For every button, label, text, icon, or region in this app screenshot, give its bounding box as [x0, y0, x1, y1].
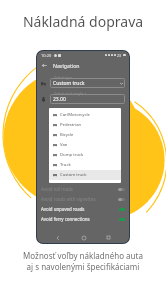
button[interactable]: Truck	[53, 160, 121, 170]
staticText: 23	[117, 53, 122, 58]
button[interactable]: Back	[53, 233, 62, 242]
staticText: Avoid roads with vignettes	[41, 196, 96, 202]
button[interactable]: Recents	[104, 233, 113, 242]
staticText: Pedestrian	[60, 122, 82, 128]
staticText: Van	[60, 142, 68, 148]
button[interactable]: Avoid ferry connections	[41, 214, 125, 224]
button[interactable]: Avoid toll roads	[41, 184, 125, 194]
staticText: Car/Motorcycle	[60, 112, 90, 118]
button[interactable]: Avoid roads with vignettes	[41, 194, 125, 204]
staticText: Dump truck	[60, 152, 84, 158]
staticText: Bicycle	[60, 132, 74, 138]
button[interactable]: Van	[53, 140, 121, 150]
button[interactable]: Bicycle	[53, 130, 121, 140]
staticText: Custom truck	[53, 80, 85, 87]
staticText: Custom truck	[60, 172, 87, 178]
button[interactable]: Dump truck	[53, 150, 121, 160]
button[interactable]: Car/Motorcycle	[53, 110, 121, 120]
button[interactable]: Home	[79, 233, 88, 242]
staticText: Nákladná doprava	[0, 12, 166, 31]
button[interactable]: Back	[40, 61, 49, 70]
staticText: Navigation	[53, 62, 80, 69]
staticText: Vehicle type	[54, 76, 72, 80]
staticText: Avoid ferry connections	[41, 216, 90, 222]
button[interactable]: 23.00	[50, 94, 125, 104]
staticText: Možnosť voľby nákladného auta aj s navol…	[0, 250, 166, 272]
staticText: 23.00	[53, 96, 66, 103]
button[interactable]: Custom truck	[53, 170, 121, 180]
button[interactable]: Pedestrian	[53, 120, 121, 130]
staticText: 10:20	[41, 53, 52, 58]
button[interactable]: Avoid unpaved roads	[41, 204, 125, 214]
staticText: Avoid toll roads	[41, 186, 73, 192]
staticText: Truck	[60, 162, 71, 168]
button[interactable]: Custom truck	[50, 78, 125, 88]
staticText: Avoid unpaved roads	[41, 206, 85, 212]
staticText: Vehicle total weight t	[54, 92, 87, 96]
